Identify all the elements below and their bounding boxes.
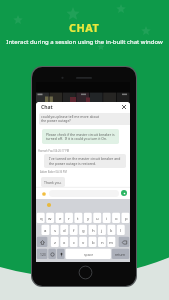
button[interactable]: Emoji keyboard (48, 249, 56, 259)
staticText: I've turned on the master circuit breake… (49, 156, 121, 166)
button[interactable]: q (37, 213, 45, 223)
button[interactable]: Shift (37, 237, 48, 247)
staticText: w (48, 215, 52, 221)
button[interactable]: g (79, 225, 87, 235)
staticText: p (125, 215, 128, 221)
button[interactable]: u (93, 213, 101, 223)
staticText: h (92, 227, 95, 233)
staticText: o (115, 215, 118, 221)
button[interactable]: a (41, 225, 49, 235)
staticText: s (54, 227, 57, 233)
staticText: Adam Baker 04:36 PM (40, 170, 67, 174)
staticText: i (106, 215, 108, 221)
button[interactable]: w (46, 213, 54, 223)
staticText: 123 (40, 252, 46, 256)
staticText: g (82, 227, 85, 233)
staticText: r (68, 215, 70, 221)
button[interactable]: return (112, 249, 129, 259)
button[interactable]: s (51, 225, 59, 235)
staticText: k (110, 227, 113, 233)
staticText: z (54, 239, 57, 245)
staticText: t (77, 215, 79, 221)
button[interactable]: j (98, 225, 106, 235)
button[interactable]: Dictate (57, 249, 65, 259)
button[interactable]: y (84, 213, 92, 223)
button[interactable]: k (107, 225, 115, 235)
button[interactable]: d (60, 225, 68, 235)
button[interactable]: p (122, 213, 130, 223)
button[interactable]: space (66, 249, 111, 259)
button[interactable]: 123 (37, 249, 48, 259)
button[interactable]: v (79, 237, 87, 247)
staticText: x (63, 239, 66, 245)
staticText: f (73, 227, 75, 233)
button[interactable]: o (112, 213, 120, 223)
staticText: Chat (41, 104, 53, 111)
staticText: CHAT (69, 20, 100, 35)
staticText: l (120, 227, 122, 233)
button[interactable]: l (117, 225, 125, 235)
staticText: b (92, 239, 95, 245)
button[interactable]: t (74, 213, 82, 223)
button[interactable]: n (98, 237, 106, 247)
staticText: Thank you. (44, 180, 62, 185)
button[interactable]: Emoji (40, 190, 47, 197)
staticText: n (101, 239, 104, 245)
staticText: a (44, 227, 47, 233)
button[interactable]: Close chat (120, 103, 128, 111)
button[interactable]: i (103, 213, 111, 223)
button[interactable]: h (89, 225, 97, 235)
staticText: return (115, 252, 126, 257)
button[interactable]: x (60, 237, 68, 247)
staticText: space (84, 252, 94, 257)
button[interactable]: e (56, 213, 64, 223)
button[interactable]: c (70, 237, 78, 247)
button[interactable]: r (65, 213, 73, 223)
staticText: v (82, 239, 85, 245)
button[interactable]: z (51, 237, 59, 247)
staticText: q (40, 215, 43, 221)
button[interactable]: m (107, 237, 115, 247)
staticText: Hannah Paul 04:26:17 PM (38, 149, 70, 153)
button[interactable]: f (70, 225, 78, 235)
staticText: could you please tell me more about the … (41, 114, 100, 123)
staticText: u (96, 215, 99, 221)
button[interactable]: Backspace (119, 237, 130, 247)
staticText: c (73, 239, 76, 245)
staticText: Interact during a session using the in-b… (6, 38, 163, 46)
staticText: m (109, 239, 114, 245)
staticText: d (63, 227, 66, 233)
staticText: e (59, 215, 62, 221)
button[interactable]: Send (121, 190, 127, 196)
staticText: y (87, 215, 90, 221)
button[interactable]: b (89, 237, 97, 247)
staticText: j (101, 227, 103, 233)
staticText: Please check if the master circuit break… (46, 132, 115, 141)
